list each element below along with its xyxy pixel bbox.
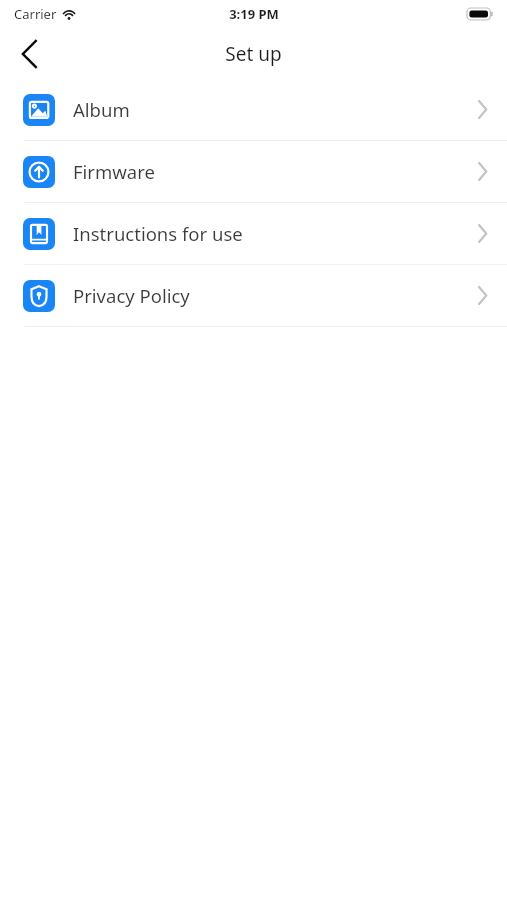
other: Firmware bbox=[23, 156, 55, 188]
other: Instructions for use bbox=[23, 218, 55, 250]
staticText: Set up bbox=[225, 41, 282, 67]
button[interactable]: Firmware bbox=[0, 141, 507, 202]
button[interactable]: Album bbox=[0, 79, 507, 140]
button[interactable]: Instructions for use bbox=[0, 203, 507, 264]
button[interactable]: Back bbox=[0, 28, 58, 79]
staticText: 3:19 PM bbox=[229, 5, 279, 23]
staticText: Firmware bbox=[73, 159, 155, 184]
other: Album bbox=[23, 94, 55, 126]
button[interactable]: Privacy Policy bbox=[0, 265, 507, 326]
staticText: Privacy Policy bbox=[73, 283, 190, 308]
other: Privacy Policy bbox=[23, 280, 55, 312]
staticText: Album bbox=[73, 97, 130, 122]
staticText: Instructions for use bbox=[73, 221, 243, 246]
staticText: Carrier bbox=[14, 5, 57, 23]
